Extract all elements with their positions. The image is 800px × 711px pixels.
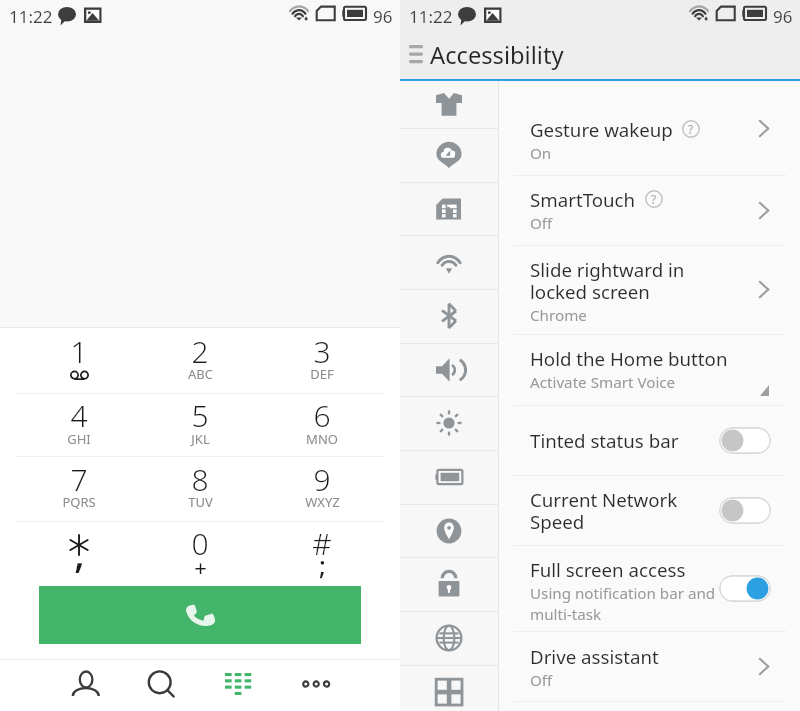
staticText: 1 (70, 331, 88, 372)
staticText: JKL (191, 430, 210, 448)
button[interactable] (499, 405, 800, 475)
button[interactable]: cloud (400, 128, 498, 182)
staticText: locked screen (530, 279, 650, 304)
staticText: SmartTouch (530, 187, 636, 212)
staticText: ABC (188, 365, 213, 383)
button[interactable]: Call (39, 586, 361, 644)
button[interactable]: 8 (140, 457, 260, 521)
button[interactable]: shirt (400, 81, 498, 128)
button[interactable] (499, 631, 800, 701)
staticText: 3 (313, 331, 331, 372)
staticText: DEF (310, 365, 334, 383)
button[interactable]: More (278, 660, 354, 711)
button[interactable]: Contacts (48, 660, 124, 711)
button[interactable]: 1 (19, 328, 139, 393)
button[interactable] (499, 175, 800, 245)
button[interactable]: apps (400, 665, 498, 711)
staticText: 5 (191, 395, 209, 436)
button[interactable]: Off (719, 427, 771, 454)
button[interactable] (499, 245, 800, 334)
button[interactable]: Search (123, 660, 199, 711)
staticText: PQRS (62, 493, 96, 511)
staticText: 0 (191, 523, 209, 564)
button[interactable]: 7 (19, 457, 139, 521)
button[interactable]: battery (400, 450, 498, 504)
button[interactable]: On (719, 575, 771, 602)
button[interactable]: 6 (262, 394, 382, 456)
staticText: # (312, 523, 332, 564)
button[interactable] (499, 334, 800, 405)
staticText: Activate Smart Voice (530, 372, 676, 393)
staticText: ? (651, 191, 657, 207)
button[interactable]: 4 (19, 394, 139, 456)
staticText: + (194, 552, 207, 582)
button[interactable]: Dialpad (200, 660, 276, 711)
staticText: ; (319, 548, 326, 582)
staticText: Hold the Home button (530, 346, 728, 371)
staticText: MNO (306, 430, 338, 448)
button[interactable] (499, 81, 800, 175)
staticText: 96 (773, 5, 793, 28)
button[interactable]: sim (400, 182, 498, 236)
staticText: Using notification bar and (530, 583, 716, 604)
staticText: TUV (188, 493, 213, 511)
staticText: multi-task (530, 604, 602, 625)
staticText: 11:22 (409, 5, 453, 28)
staticText: , (74, 525, 85, 579)
button[interactable]: Off (719, 497, 771, 524)
staticText: ? (688, 121, 694, 137)
button[interactable]: loc (400, 504, 498, 558)
staticText: Slide rightward in (530, 257, 685, 282)
staticText: Off (530, 670, 553, 691)
staticText: WXYZ (305, 493, 340, 511)
staticText: Current Network (530, 487, 678, 512)
staticText: 11:22 (9, 5, 53, 28)
staticText: 6 (313, 395, 331, 436)
staticText: 2 (191, 331, 209, 372)
button[interactable]: bright (400, 396, 498, 450)
staticText: Chrome (530, 305, 587, 326)
button[interactable]: 0 (140, 522, 260, 586)
staticText: Speed (530, 509, 585, 534)
button[interactable]: # (262, 522, 382, 586)
staticText: Tinted status bar (530, 428, 679, 453)
button[interactable]: 2 (140, 328, 260, 393)
button[interactable]: bt (400, 289, 498, 343)
button[interactable]: wifi (400, 235, 498, 289)
staticText: Accessibility (430, 39, 564, 71)
button[interactable]: globe (400, 611, 498, 665)
button[interactable] (499, 475, 800, 545)
button[interactable]: 3 (262, 328, 382, 393)
button[interactable]: lock (400, 557, 498, 611)
staticText: 7 (70, 459, 88, 500)
button[interactable]: 5 (140, 394, 260, 456)
staticText: 4 (70, 395, 88, 436)
staticText: Gesture wakeup (530, 117, 673, 142)
button[interactable]: Menu (403, 40, 429, 68)
button[interactable]: , (19, 522, 139, 586)
staticText: Full screen access (530, 557, 686, 582)
button[interactable] (499, 545, 800, 631)
staticText: 96 (373, 5, 393, 28)
staticText: On (530, 143, 552, 164)
staticText: 9 (313, 459, 331, 500)
staticText: 8 (191, 459, 209, 500)
staticText: GHI (67, 430, 91, 448)
staticText: Off (530, 213, 553, 234)
button[interactable]: 9 (262, 457, 382, 521)
staticText: Drive assistant (530, 644, 659, 669)
button[interactable]: sound (400, 343, 498, 397)
